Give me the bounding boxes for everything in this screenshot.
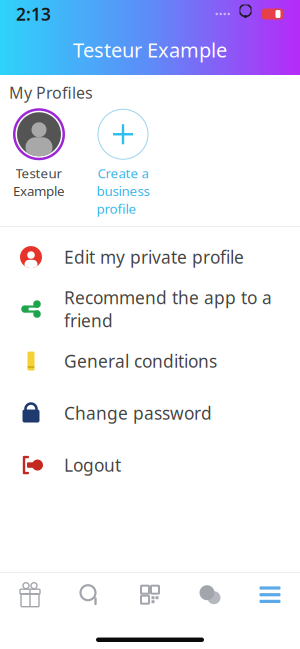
staticText: Edit my private profile <box>64 246 244 269</box>
button[interactable]: Create a <box>86 108 160 217</box>
button[interactable]: Edit my private profile <box>0 231 300 283</box>
staticText: Example <box>13 182 65 200</box>
button[interactable]: Recommend the app to a friend <box>0 283 300 335</box>
staticText: Create a <box>97 164 148 182</box>
button[interactable]: Logout <box>0 439 300 491</box>
staticText: Change password <box>64 402 212 425</box>
button[interactable]: Scan QR code <box>120 573 180 617</box>
button[interactable]: Change password <box>0 387 300 439</box>
staticText: Testeur Example <box>73 36 227 63</box>
staticText: General conditions <box>64 350 217 373</box>
staticText: business profile <box>96 182 149 217</box>
button[interactable]: Gifts <box>0 573 60 617</box>
button[interactable]: Search <box>60 573 120 617</box>
staticText: Recommend the app to a friend <box>64 286 272 332</box>
staticText: Logout <box>64 454 121 477</box>
staticText: My Profiles <box>9 82 93 103</box>
button[interactable]: Testeur <box>8 108 70 200</box>
staticText: 2:13 <box>16 2 51 25</box>
button[interactable]: Messages <box>180 573 240 617</box>
button[interactable]: Menu <box>240 573 300 617</box>
button[interactable]: General conditions <box>0 335 300 387</box>
staticText: Testeur <box>15 164 62 182</box>
